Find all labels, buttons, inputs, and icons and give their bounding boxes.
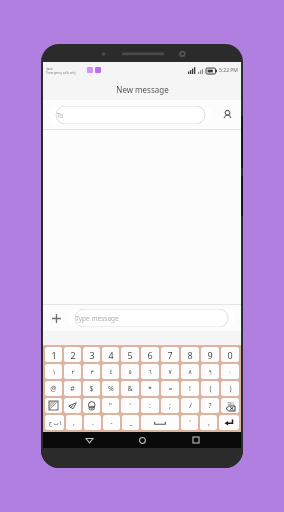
- button[interactable]: Home: [134, 432, 150, 448]
- button[interactable]: ٩: [201, 364, 219, 379]
- staticText: ا ب ج: [48, 419, 62, 426]
- staticText: ٦: [148, 368, 152, 375]
- button[interactable]: [141, 415, 179, 430]
- button[interactable]: 4: [102, 347, 119, 362]
- staticText: 9: [207, 349, 213, 361]
- staticText: Emergency calls only: [46, 71, 76, 75]
- button[interactable]: ا ب ج: [45, 415, 64, 430]
- button[interactable]: ٨: [181, 364, 199, 379]
- staticText: ٤: [109, 368, 113, 375]
- staticText: -: [110, 418, 113, 428]
- staticText: !: [189, 384, 191, 394]
- button[interactable]: :: [141, 398, 159, 413]
- staticText: ٥: [128, 368, 132, 375]
- staticText: DEL: [227, 401, 235, 406]
- button[interactable]: #: [64, 381, 81, 396]
- button[interactable]: [64, 398, 81, 413]
- staticText: .: [92, 418, 94, 428]
- staticText: $: [89, 384, 94, 394]
- button[interactable]: Back: [81, 432, 97, 448]
- button[interactable]: /: [181, 398, 199, 413]
- staticText: =: [168, 384, 173, 394]
- button[interactable]: @: [45, 381, 62, 396]
- button[interactable]: ': [181, 415, 198, 430]
- button[interactable]: _: [122, 415, 139, 430]
- staticText: ٨: [188, 368, 192, 375]
- button[interactable]: [83, 398, 100, 413]
- staticText: _: [129, 418, 133, 428]
- button[interactable]: ,: [66, 415, 82, 430]
- staticText: 6: [147, 349, 153, 361]
- button[interactable]: *: [141, 381, 159, 396]
- staticText: *: [148, 384, 152, 394]
- staticText: ?: [208, 401, 212, 411]
- staticText: ٧: [168, 368, 172, 375]
- staticText: %: [108, 384, 114, 394]
- button[interactable]: ?: [201, 398, 219, 413]
- button[interactable]: ٧: [161, 364, 179, 379]
- staticText: ': [129, 401, 131, 411]
- staticText: 7: [167, 349, 173, 361]
- button[interactable]: 3: [83, 347, 100, 362]
- staticText: To: [56, 111, 64, 120]
- button[interactable]: To: [49, 106, 212, 124]
- button[interactable]: ٤: [102, 364, 119, 379]
- staticText: 5:22 PM: [219, 67, 238, 74]
- staticText: ': [189, 418, 191, 428]
- button[interactable]: ': [121, 398, 139, 413]
- button[interactable]: %: [102, 381, 119, 396]
- button[interactable]: -: [103, 415, 120, 430]
- staticText: ٢: [71, 368, 75, 375]
- button[interactable]: ;: [161, 398, 179, 413]
- staticText: 3: [89, 349, 95, 361]
- button[interactable]: 1: [45, 347, 62, 362]
- button[interactable]: DEL: [221, 398, 239, 413]
- button[interactable]: 5: [121, 347, 139, 362]
- button[interactable]: Attach: [49, 311, 63, 325]
- staticText: ٩: [208, 368, 212, 375]
- button[interactable]: ": [102, 398, 119, 413]
- button[interactable]: 2: [64, 347, 81, 362]
- staticText: ,: [73, 418, 75, 428]
- button[interactable]: ٢: [64, 364, 81, 379]
- button[interactable]: ,: [200, 415, 217, 430]
- button[interactable]: &: [121, 381, 139, 396]
- staticText: ;: [169, 401, 171, 411]
- staticText: ": [109, 401, 112, 411]
- button[interactable]: .: [84, 415, 101, 430]
- button[interactable]: ٦: [141, 364, 159, 379]
- button[interactable]: (: [201, 381, 219, 396]
- button[interactable]: 7: [161, 347, 179, 362]
- staticText: ,: [208, 418, 210, 428]
- staticText: 2: [70, 349, 76, 361]
- button[interactable]: Type message: [68, 309, 235, 327]
- staticText: (: [209, 384, 212, 394]
- staticText: ١: [52, 368, 56, 375]
- staticText: /: [189, 401, 192, 411]
- staticText: New message: [116, 84, 169, 95]
- button[interactable]: ): [221, 381, 239, 396]
- button[interactable]: [219, 415, 239, 430]
- button[interactable]: 8: [181, 347, 199, 362]
- button[interactable]: $: [83, 381, 100, 396]
- button[interactable]: ٥: [121, 364, 139, 379]
- staticText: @: [50, 384, 57, 394]
- staticText: ٣: [90, 368, 94, 375]
- button[interactable]: =: [161, 381, 179, 396]
- button[interactable]: 6: [141, 347, 159, 362]
- button[interactable]: 9: [201, 347, 219, 362]
- staticText: ٠: [228, 368, 232, 375]
- staticText: 4: [108, 349, 114, 361]
- button[interactable]: Recents: [188, 432, 204, 448]
- staticText: :: [149, 401, 151, 411]
- staticText: 1: [51, 349, 57, 361]
- button[interactable]: 0: [221, 347, 239, 362]
- staticText: &: [127, 384, 133, 394]
- button[interactable]: Add contact: [219, 107, 235, 123]
- button[interactable]: ٠: [221, 364, 239, 379]
- staticText: 0: [227, 349, 233, 361]
- button[interactable]: ٣: [83, 364, 100, 379]
- button[interactable]: !: [181, 381, 199, 396]
- button[interactable]: ١: [45, 364, 62, 379]
- button[interactable]: [45, 398, 62, 413]
